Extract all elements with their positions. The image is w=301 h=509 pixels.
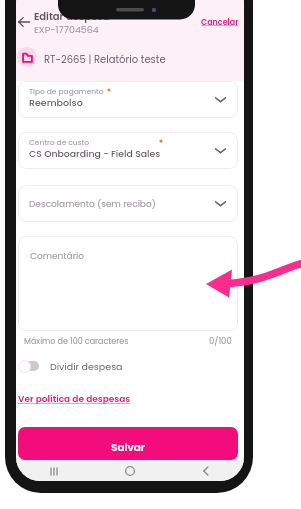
staticText: Máximo de 100 caracteres: [24, 336, 129, 347]
button[interactable]: Dividir despesa: [18, 357, 148, 375]
button[interactable]: Descolamento (sem recibo): [18, 185, 238, 222]
button[interactable]: Ver política de despesas: [18, 393, 131, 406]
staticText: EXP-17704564: [34, 23, 99, 36]
staticText: 0/100: [209, 335, 232, 347]
staticText: Comentário: [30, 250, 85, 263]
button[interactable]: Recentes: [46, 463, 62, 479]
staticText: CS Onboarding - Field Sales: [29, 147, 161, 160]
staticText: Tipo de pagamento: [29, 86, 104, 96]
button[interactable]: Salvar: [18, 427, 238, 460]
staticText: Reembolso: [29, 96, 83, 109]
staticText: RT-2665 | Relatório teste: [44, 52, 166, 66]
button[interactable]: Voltar: [16, 11, 35, 33]
button[interactable]: Tipo de pagamento: [18, 81, 238, 118]
button[interactable]: Centro de custo: [18, 132, 238, 169]
staticText: Editar despesa: [34, 9, 110, 23]
staticText: Dividir despesa: [50, 360, 123, 373]
button[interactable]: Voltar: [198, 463, 214, 479]
button[interactable]: Comentário: [18, 236, 238, 331]
staticText: Salvar: [111, 440, 146, 455]
staticText: Descolamento (sem recibo): [29, 198, 156, 211]
staticText: Ver política de despesas: [18, 393, 131, 406]
staticText: Centro de custo: [29, 137, 90, 147]
staticText: Cancelar: [201, 17, 239, 28]
button[interactable]: Cancelar: [201, 17, 239, 28]
button[interactable]: Início: [122, 463, 138, 479]
